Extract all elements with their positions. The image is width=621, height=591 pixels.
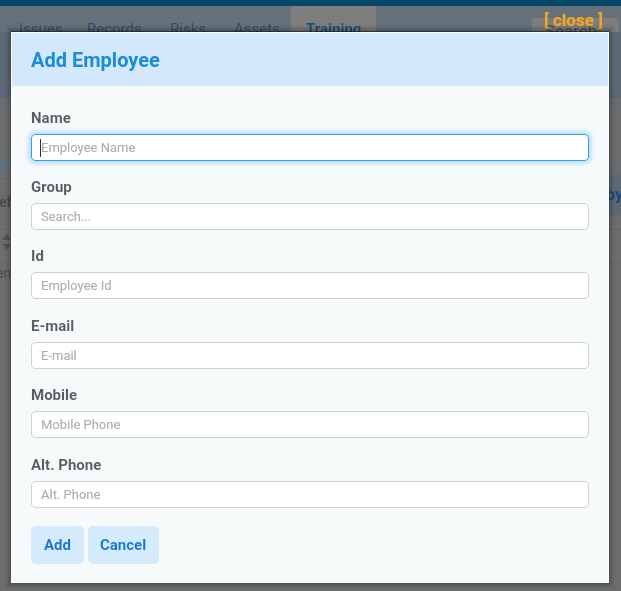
staticText: Assets (234, 20, 280, 38)
button[interactable]: E-mail (31, 342, 589, 369)
staticText: ref (0, 194, 12, 210)
button[interactable]: Cancel (88, 526, 159, 564)
staticText: Search (545, 21, 598, 41)
staticText: Mobile (31, 386, 78, 404)
staticText: Id (31, 247, 44, 265)
staticText: Add (44, 536, 72, 554)
staticText: Mobile Phone (41, 417, 121, 432)
staticText: Training (306, 20, 362, 38)
staticText: [ close ] (544, 10, 603, 30)
staticText: Name (31, 109, 71, 127)
staticText: Add Employee (31, 48, 160, 71)
staticText: Alt. Phone (41, 487, 101, 502)
staticText: Alt. Phone (31, 456, 102, 474)
staticText: Employee Name (41, 140, 136, 155)
button[interactable]: Alt. Phone (31, 481, 589, 508)
staticText: Records (87, 20, 142, 38)
staticText: Job (0, 156, 20, 172)
staticText: Group (31, 178, 72, 196)
staticText: oye (606, 185, 621, 204)
staticText: Cancel (100, 536, 147, 554)
staticText: Search... (41, 209, 92, 224)
staticText: E-mail (41, 348, 77, 363)
staticText: Risks (170, 20, 206, 38)
button[interactable]: Search... (31, 203, 589, 230)
button[interactable]: Mobile Phone (31, 411, 589, 438)
button[interactable]: Add (31, 526, 84, 564)
button[interactable]: Employee Id (31, 272, 589, 299)
staticText: Issues (19, 20, 63, 38)
staticText: E-mail (31, 317, 75, 335)
button[interactable]: Employee Name (31, 134, 589, 161)
staticText: Employee Id (41, 278, 112, 293)
staticText: en (0, 265, 12, 281)
